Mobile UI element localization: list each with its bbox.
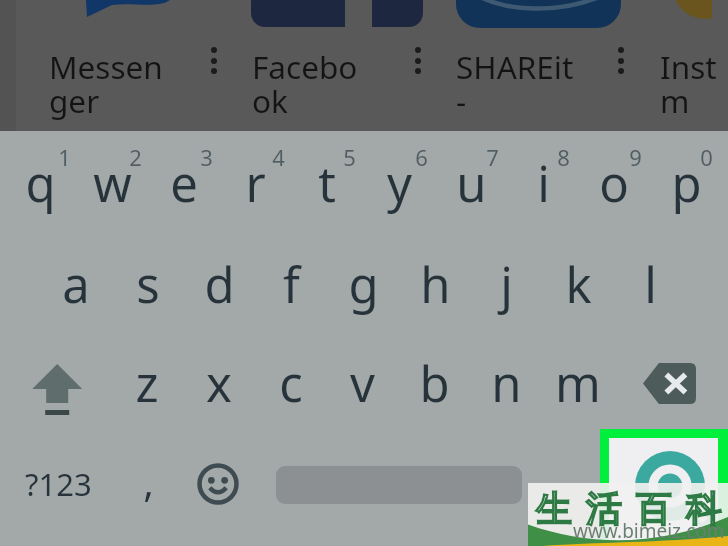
button[interactable]: 7 <box>456 139 528 174</box>
staticText: u <box>456 150 487 217</box>
button[interactable]: Search <box>600 429 728 546</box>
button[interactable]: v <box>326 344 398 422</box>
button[interactable]: ?123 <box>12 460 104 508</box>
staticText: h <box>420 251 451 318</box>
button[interactable]: 5 <box>313 139 385 174</box>
staticText: p <box>671 150 702 217</box>
staticText: t <box>318 150 336 217</box>
staticText: a <box>62 251 90 318</box>
button[interactable]: Backspace <box>643 363 696 404</box>
staticText: v <box>350 350 375 417</box>
staticText: , <box>143 454 154 508</box>
button[interactable]: 1 <box>28 139 100 174</box>
button[interactable]: 6 <box>385 139 457 174</box>
button[interactable]: r <box>219 144 291 222</box>
button[interactable]: 2 <box>99 139 171 174</box>
staticText: k <box>565 251 592 318</box>
staticText: q <box>25 150 56 217</box>
staticText: 9 <box>629 142 642 172</box>
button[interactable]: h <box>399 245 471 323</box>
staticText: x <box>206 350 232 417</box>
button[interactable]: Messen ger <box>49 45 199 123</box>
button[interactable]: SHAREit - <box>456 45 606 123</box>
staticText: 3 <box>200 142 213 172</box>
button[interactable]: d <box>183 245 255 323</box>
button[interactable]: z <box>111 344 183 422</box>
button[interactable]: Shift <box>18 356 98 428</box>
staticText: 0 <box>700 142 713 172</box>
button[interactable]: i <box>507 144 579 222</box>
staticText: 7 <box>486 142 499 172</box>
button[interactable]: j <box>470 245 542 323</box>
staticText: e <box>170 150 198 217</box>
staticText: d <box>204 251 235 318</box>
staticText: g <box>348 251 379 318</box>
staticText: r <box>245 150 266 217</box>
button[interactable]: l <box>614 245 686 323</box>
button[interactable]: w <box>76 144 148 222</box>
button[interactable]: a <box>40 245 112 323</box>
staticText: s <box>136 251 160 318</box>
button[interactable]: 9 <box>599 139 671 174</box>
button[interactable]: m <box>542 344 614 422</box>
staticText: l <box>644 251 657 318</box>
button[interactable]: g <box>327 245 399 323</box>
button[interactable]: c <box>255 344 327 422</box>
button[interactable]: b <box>398 344 470 422</box>
button[interactable]: Emoji <box>197 463 239 505</box>
button[interactable]: k <box>542 245 614 323</box>
staticText: n <box>491 350 522 417</box>
staticText: www.bimeiz.com <box>573 518 725 544</box>
button[interactable]: q <box>4 144 76 222</box>
button[interactable]: y <box>363 144 435 222</box>
button[interactable]: 8 <box>527 139 599 174</box>
staticText: z <box>135 350 159 417</box>
staticText: y <box>387 150 412 217</box>
staticText: o <box>599 150 629 217</box>
button[interactable]: t <box>291 144 363 222</box>
button[interactable]: p <box>650 144 722 222</box>
button[interactable]: e <box>148 144 220 222</box>
staticText: i <box>537 150 550 217</box>
button[interactable]: Inst m <box>660 45 728 123</box>
staticText: 4 <box>272 142 285 172</box>
staticText: 2 <box>129 142 142 172</box>
button[interactable]: n <box>470 344 542 422</box>
staticText: w <box>93 150 132 217</box>
button[interactable]: s <box>112 245 184 323</box>
staticText: 6 <box>415 142 428 172</box>
staticText: m <box>555 350 601 417</box>
button[interactable]: Facebo ok <box>252 45 402 123</box>
button[interactable]: 3 <box>170 139 242 174</box>
staticText: b <box>419 350 450 417</box>
button[interactable]: 4 <box>242 139 314 174</box>
button[interactable]: o <box>578 144 650 222</box>
button[interactable]: x <box>183 344 255 422</box>
staticText: j <box>500 251 513 318</box>
staticText: f <box>283 251 300 318</box>
button[interactable]: u <box>435 144 507 222</box>
staticText: 8 <box>557 142 570 172</box>
staticText: ?123 <box>25 463 92 505</box>
staticText: 1 <box>58 142 71 172</box>
staticText: 生活百科 <box>529 486 728 531</box>
button[interactable]: , <box>112 449 184 513</box>
button[interactable]: f <box>255 245 327 323</box>
staticText: c <box>279 350 303 417</box>
staticText: 5 <box>343 142 356 172</box>
button[interactable]: 0 <box>670 139 728 174</box>
